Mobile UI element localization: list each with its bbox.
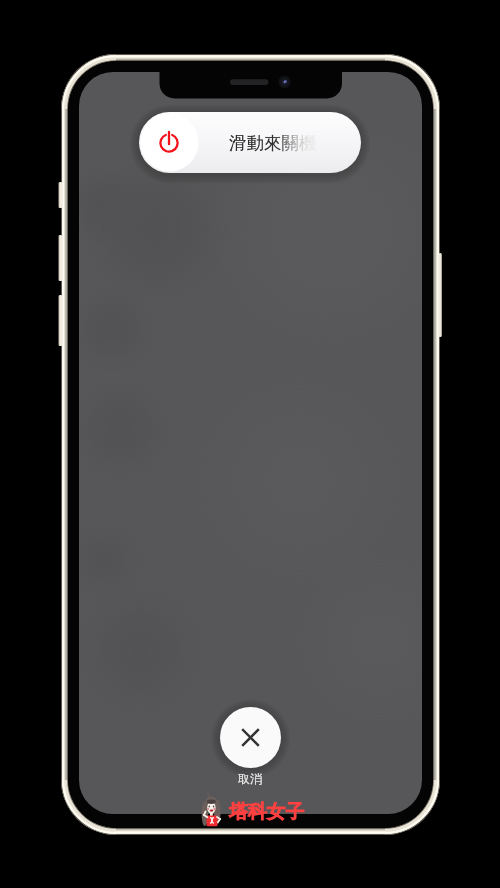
staticText: 取消	[238, 771, 262, 786]
staticText: 滑動來關機	[229, 132, 317, 154]
button[interactable]: 取消	[220, 707, 281, 768]
button[interactable]: 滑動來關機	[139, 112, 361, 173]
staticText: 塔科女子	[229, 800, 305, 824]
